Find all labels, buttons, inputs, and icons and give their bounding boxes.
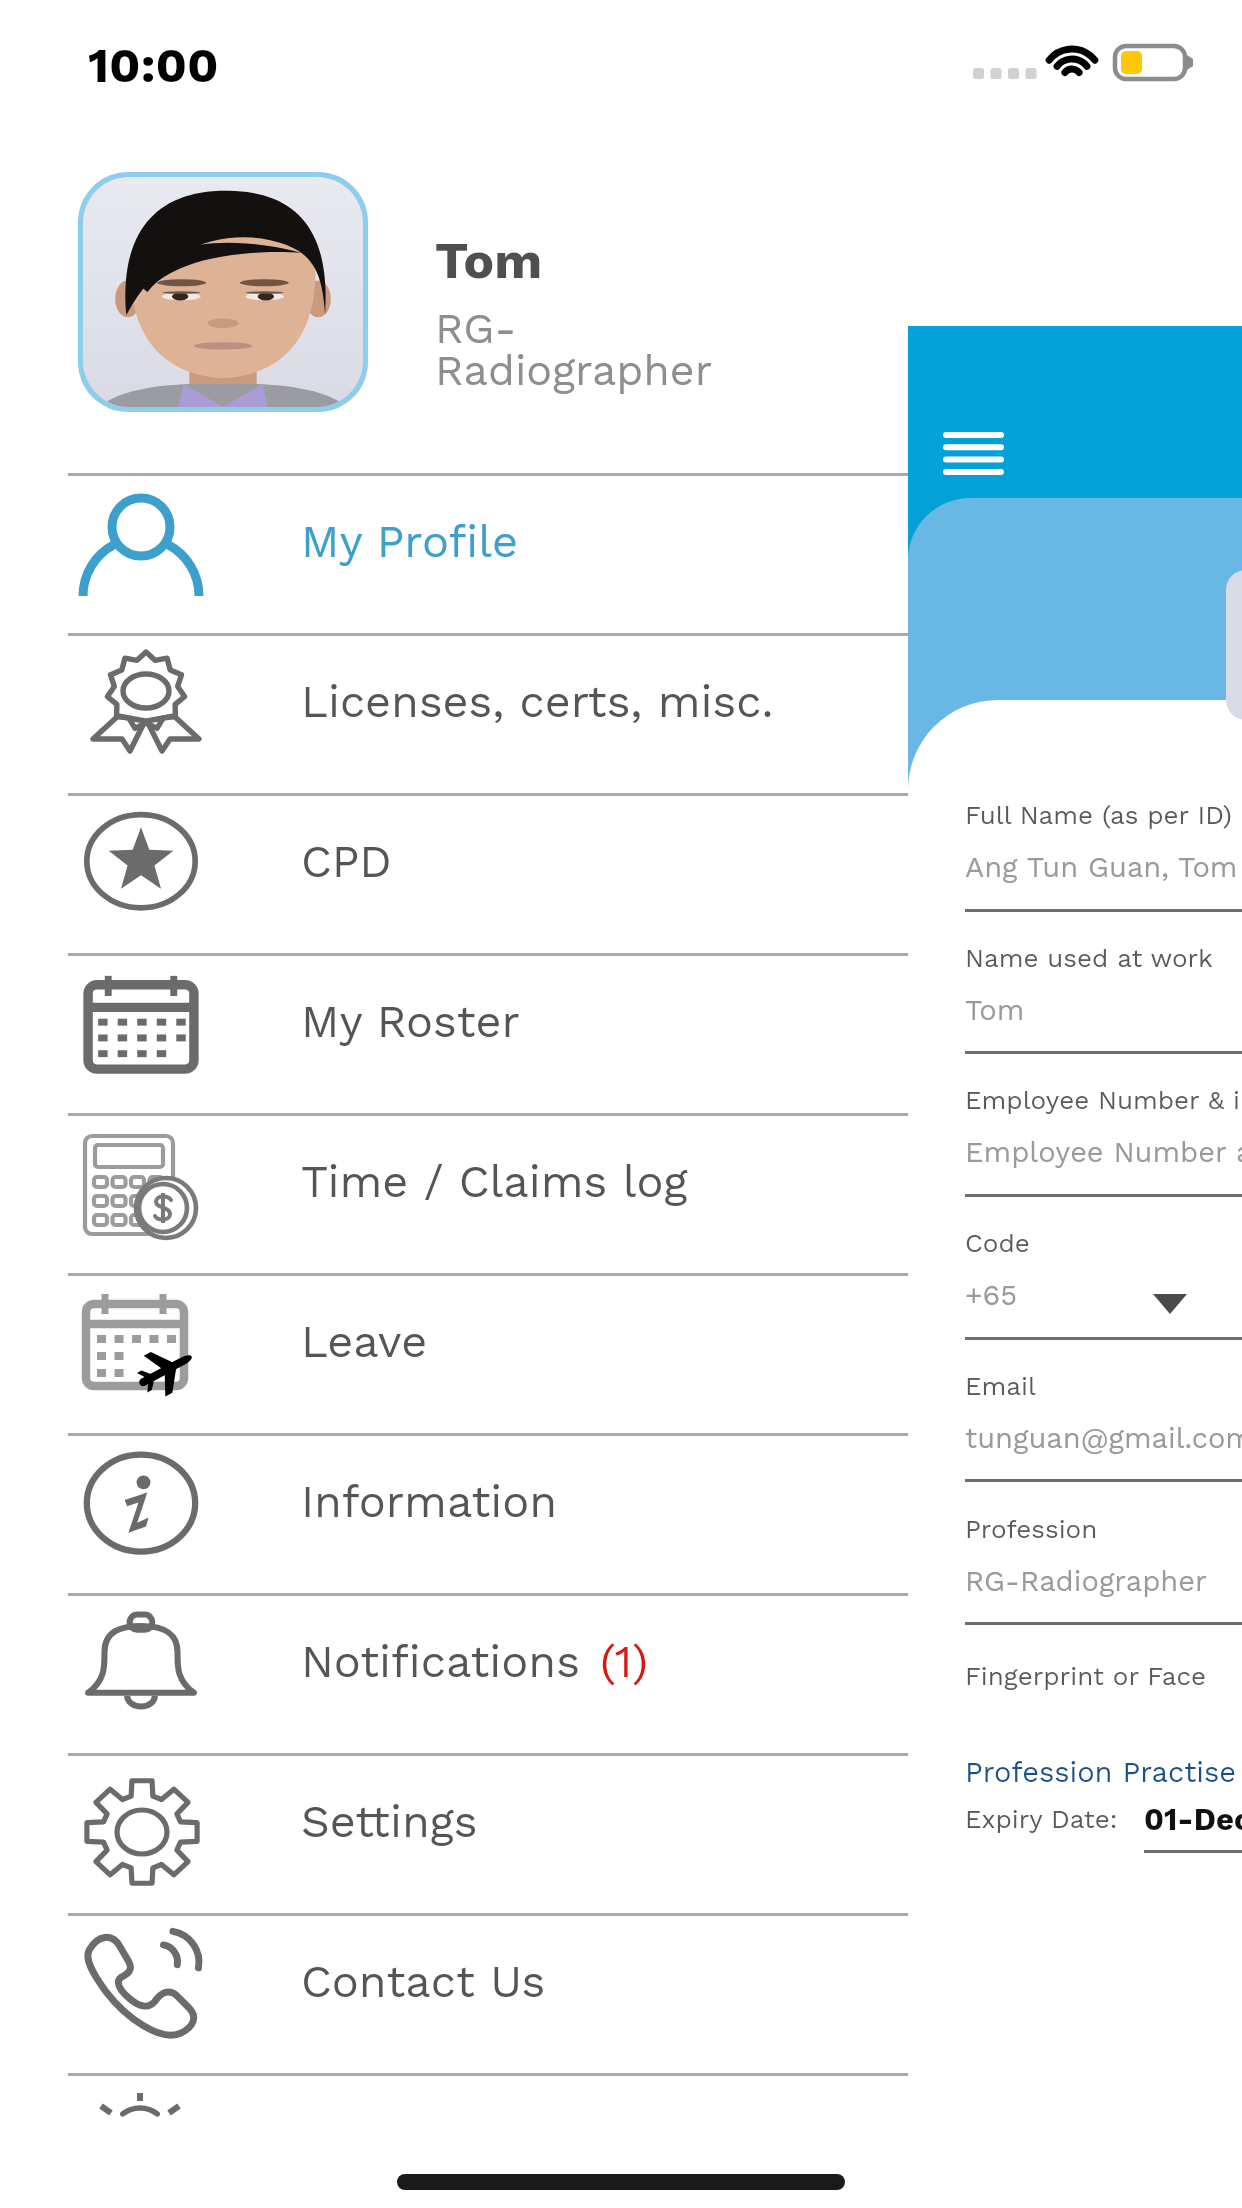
staticText: My Profile	[301, 515, 518, 568]
staticText: Email	[965, 1371, 1036, 1401]
staticText: Profession Practise	[965, 1755, 1237, 1789]
staticText: Code	[965, 1228, 1030, 1258]
staticText: Settings	[301, 1795, 478, 1848]
staticText: Fingerprint or Face	[965, 1661, 1207, 1691]
staticText: RG-Radiographer	[965, 1564, 1207, 1598]
button[interactable]: Leave	[0, 1276, 908, 1433]
staticText: My Roster	[301, 995, 520, 1048]
staticText: Licenses, certs, misc.	[301, 675, 774, 728]
button[interactable]: Settings	[0, 1756, 908, 1913]
button[interactable]: My Roster	[0, 956, 908, 1113]
button[interactable]: CPD	[0, 796, 908, 953]
button[interactable]: Time / Claims log	[0, 1116, 908, 1273]
staticText: Information	[301, 1475, 558, 1528]
staticText: (1)	[600, 1635, 649, 1688]
staticText: 01-Dec	[1144, 1801, 1242, 1837]
staticText: Tom	[965, 993, 1025, 1027]
button[interactable]: Information	[0, 1436, 908, 1593]
button[interactable]: My Profile	[0, 476, 908, 633]
staticText: Notifications	[301, 1635, 580, 1688]
staticText: Time / Claims log	[301, 1155, 688, 1208]
button[interactable]: Licenses, certs, misc.	[0, 636, 908, 793]
staticText: tunguan@gmail.com	[965, 1421, 1242, 1455]
staticText: +65	[965, 1278, 1018, 1312]
staticText: CPD	[301, 835, 392, 888]
staticText: Tom	[435, 231, 543, 291]
staticText: Ang Tun Guan, Tom	[965, 850, 1238, 884]
staticText: 10:00	[88, 36, 219, 93]
button[interactable]: Contact Us	[0, 1916, 908, 2073]
staticText: Employee Number a	[965, 1135, 1242, 1169]
button[interactable]: Notifications	[0, 1596, 908, 1753]
staticText: RG- Radiographer	[435, 303, 713, 396]
staticText: Profession	[965, 1514, 1098, 1544]
staticText: Name used at work	[965, 943, 1213, 973]
staticText: Contact Us	[301, 1955, 546, 2008]
staticText: Leave	[301, 1315, 428, 1368]
staticText: Employee Number & in	[965, 1085, 1242, 1115]
staticText: Full Name (as per ID)	[965, 800, 1232, 830]
other: Menu	[946, 432, 1002, 474]
staticText: Expiry Date:	[965, 1804, 1118, 1834]
